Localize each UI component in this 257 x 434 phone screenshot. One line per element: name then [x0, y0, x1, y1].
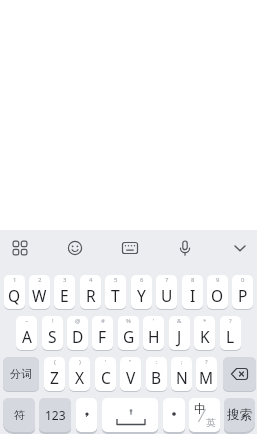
staticText: 123 — [45, 407, 66, 423]
staticText: * — [203, 317, 207, 325]
button[interactable] — [163, 398, 185, 432]
staticText: X — [75, 367, 85, 388]
staticText: E — [60, 285, 69, 306]
button[interactable]: ( — [44, 357, 65, 391]
staticText: B — [151, 367, 162, 388]
staticText: W — [32, 285, 47, 306]
staticText: @ — [75, 317, 81, 325]
button[interactable]: 分词 — [3, 357, 39, 391]
button[interactable]: * — [194, 316, 215, 350]
button[interactable]: 123 — [39, 398, 71, 432]
staticText: 4 — [89, 276, 93, 284]
button[interactable]: @ — [67, 316, 88, 350]
staticText: ? — [205, 358, 208, 366]
button[interactable]: % — [118, 316, 139, 350]
staticText: S — [48, 326, 57, 347]
staticText: 英 — [206, 417, 216, 429]
staticText: 2 — [38, 276, 42, 284]
staticText: D — [72, 326, 84, 347]
button[interactable] — [232, 240, 248, 256]
button[interactable] — [121, 240, 139, 256]
staticText: ' — [105, 358, 107, 366]
staticText: ~ — [25, 317, 29, 325]
button[interactable]: 5 — [105, 275, 126, 309]
button[interactable]: ) — [69, 357, 90, 391]
staticText: 符 — [14, 408, 25, 422]
staticText: 5 — [114, 276, 118, 284]
staticText: & — [177, 317, 182, 325]
staticText: P — [238, 285, 248, 306]
button[interactable]: & — [169, 316, 190, 350]
button[interactable]: 8 — [182, 275, 203, 309]
button[interactable]: 搜索 — [224, 398, 255, 432]
button[interactable]: ' — [143, 316, 164, 350]
button[interactable]: # — [92, 316, 113, 350]
staticText: ! — [52, 317, 54, 325]
button[interactable]: ? — [196, 357, 217, 391]
staticText: N — [176, 367, 188, 388]
staticText: % — [126, 317, 131, 325]
button[interactable]: ~ — [16, 316, 37, 350]
staticText: O — [211, 285, 224, 306]
button[interactable]: 3 — [54, 275, 75, 309]
staticText: M — [199, 367, 214, 388]
staticText: ; — [181, 358, 183, 366]
staticText: T — [111, 285, 120, 306]
staticText: ) — [79, 358, 81, 366]
staticText: 6 — [140, 276, 144, 284]
staticText: ( — [54, 358, 56, 366]
staticText: F — [98, 326, 107, 347]
staticText: J — [177, 326, 182, 347]
button[interactable]: 9 — [207, 275, 228, 309]
staticText: Q — [8, 285, 21, 306]
staticText: H — [148, 326, 160, 347]
button[interactable]: 符 — [3, 398, 35, 432]
staticText: 0 — [241, 276, 245, 284]
staticText: C — [101, 367, 111, 388]
staticText: Z — [50, 367, 59, 388]
button[interactable]: 6 — [131, 275, 152, 309]
staticText: 中 — [194, 401, 206, 416]
button[interactable] — [223, 357, 256, 391]
button[interactable]: : — [146, 357, 167, 391]
staticText: R — [86, 285, 96, 306]
button[interactable] — [177, 240, 193, 256]
button[interactable]: ; — [171, 357, 192, 391]
staticText: ' — [153, 317, 155, 325]
staticText: 1 — [13, 276, 17, 284]
button[interactable]: 1 — [4, 275, 25, 309]
button[interactable] — [12, 240, 28, 256]
staticText: 8 — [191, 276, 195, 284]
staticText: L — [226, 326, 235, 347]
staticText: 3 — [63, 276, 67, 284]
staticText: # — [101, 317, 105, 325]
staticText: 9 — [216, 276, 220, 284]
staticText: K — [200, 326, 210, 347]
button[interactable] — [67, 240, 83, 256]
button[interactable]: ' — [95, 357, 116, 391]
button[interactable]: " — [120, 357, 141, 391]
button[interactable]: 0 — [232, 275, 253, 309]
staticText: U — [161, 285, 173, 306]
staticText: 分词 — [10, 367, 32, 381]
staticText: " — [129, 358, 132, 366]
button[interactable]: 4 — [80, 275, 101, 309]
button[interactable]: ! — [42, 316, 63, 350]
staticText: G — [123, 326, 135, 347]
button[interactable]: 2 — [29, 275, 50, 309]
staticText: 搜索 — [227, 407, 252, 423]
staticText: ? — [229, 317, 232, 325]
button[interactable] — [102, 398, 158, 432]
staticText: V — [126, 367, 136, 388]
button[interactable] — [76, 398, 97, 432]
staticText: A — [22, 326, 32, 347]
staticText: Y — [137, 285, 146, 306]
staticText: : — [156, 358, 158, 366]
button[interactable]: ? — [220, 316, 241, 350]
button[interactable]: 7 — [156, 275, 177, 309]
staticText: I — [190, 285, 196, 306]
button[interactable]: 中 — [189, 398, 220, 432]
staticText: 7 — [165, 276, 169, 284]
